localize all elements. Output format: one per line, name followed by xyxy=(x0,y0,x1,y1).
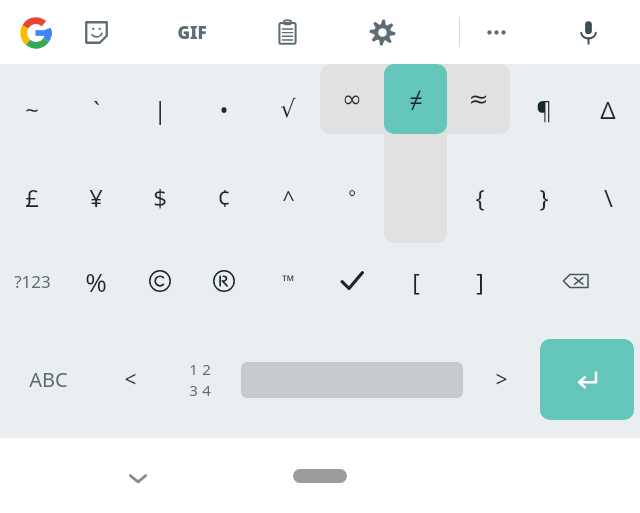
staticText: • xyxy=(219,93,229,126)
button[interactable]: > xyxy=(468,321,534,438)
button[interactable]: ` xyxy=(64,64,128,154)
button[interactable]: ¶ xyxy=(512,64,576,154)
button[interactable]: ^ xyxy=(256,154,320,241)
button[interactable] xyxy=(448,64,512,154)
button[interactable]: Hide keyboard xyxy=(116,456,160,500)
staticText: 4 xyxy=(202,380,211,400)
staticText: ¶ xyxy=(536,93,552,126)
staticText: } xyxy=(539,181,549,214)
staticText: √ xyxy=(280,95,296,123)
button[interactable]: ≈ xyxy=(447,64,510,134)
staticText: > xyxy=(495,365,508,394)
staticText: ™ xyxy=(282,270,295,292)
staticText: < xyxy=(124,365,137,394)
button[interactable]: £ xyxy=(0,154,64,241)
button[interactable]: ™ xyxy=(256,241,320,321)
staticText: Δ xyxy=(600,93,616,126)
staticText: ?123 xyxy=(14,270,51,293)
button[interactable]: ] xyxy=(448,241,512,321)
button[interactable]: < xyxy=(97,321,163,438)
staticText: ≈ xyxy=(468,85,489,113)
button[interactable]: ¢ xyxy=(192,154,256,241)
staticText: £ xyxy=(25,181,39,214)
button[interactable]: Voice input xyxy=(564,8,612,56)
staticText: | xyxy=(153,93,167,126)
staticText: ¥ xyxy=(89,181,103,214)
button[interactable] xyxy=(320,64,384,154)
button[interactable]: √ xyxy=(256,64,320,154)
staticText: 2 xyxy=(202,359,211,379)
button[interactable]: ∞ xyxy=(320,64,384,134)
button[interactable]: ° xyxy=(320,154,384,241)
button[interactable]: Settings xyxy=(358,8,406,56)
button[interactable]: \ xyxy=(576,154,640,241)
button[interactable]: $ xyxy=(128,154,192,241)
staticText: $ xyxy=(153,181,167,214)
button[interactable] xyxy=(384,64,448,154)
staticText: ∞ xyxy=(342,85,362,113)
button[interactable]: Clipboard xyxy=(263,8,311,56)
button[interactable]: Google xyxy=(13,10,58,55)
button[interactable]: ¥ xyxy=(64,154,128,241)
button[interactable]: ~ xyxy=(0,64,64,154)
button[interactable]: ≠ xyxy=(384,64,447,134)
staticText: ` xyxy=(93,93,100,126)
button[interactable]: ABC xyxy=(0,321,97,438)
staticText: 3 xyxy=(189,380,198,400)
button[interactable]: ?123 xyxy=(0,241,64,321)
staticText: ABC xyxy=(29,366,68,393)
staticText: ° xyxy=(348,185,356,210)
staticText: \ xyxy=(604,181,613,214)
staticText: ≠ xyxy=(409,83,423,116)
staticText: ^ xyxy=(282,183,295,213)
button[interactable]: GIF xyxy=(168,8,216,56)
button[interactable]: Enter xyxy=(540,339,634,420)
staticText: % xyxy=(85,264,107,299)
button[interactable]: % xyxy=(64,241,128,321)
button[interactable]: Check xyxy=(320,241,384,321)
staticText: ~ xyxy=(25,93,39,126)
button[interactable]: Stickers xyxy=(72,8,120,56)
button[interactable]: Registered xyxy=(192,241,256,321)
staticText: [ xyxy=(412,266,420,297)
staticText: ] xyxy=(476,266,484,297)
button[interactable]: | xyxy=(128,64,192,154)
button[interactable]: More options xyxy=(472,8,520,56)
button[interactable]: [ xyxy=(384,241,448,321)
button[interactable]: { xyxy=(448,154,512,241)
staticText: GIF xyxy=(177,21,207,44)
button[interactable]: • xyxy=(192,64,256,154)
staticText: ¢ xyxy=(217,181,231,214)
staticText: 1 xyxy=(189,359,198,379)
button[interactable]: Δ xyxy=(576,64,640,154)
staticText: { xyxy=(475,181,485,214)
button[interactable]: Numeric keypad xyxy=(163,321,236,438)
button[interactable]: Backspace xyxy=(512,241,640,321)
button[interactable]: Copyright xyxy=(128,241,192,321)
button[interactable]: } xyxy=(512,154,576,241)
